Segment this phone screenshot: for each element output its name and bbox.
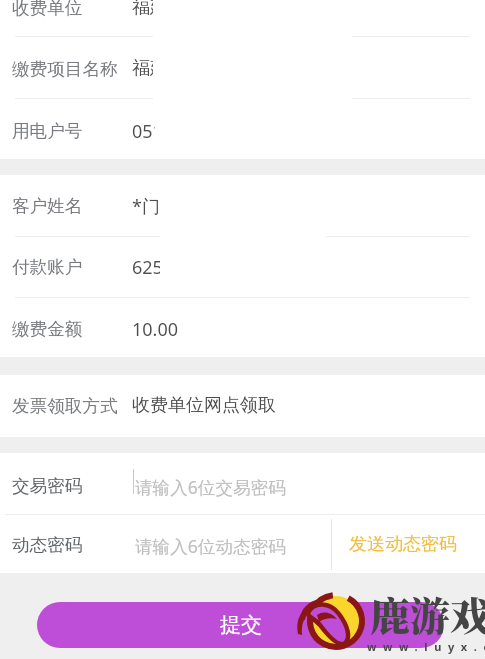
staticText: 收费单位网点领取	[132, 394, 276, 417]
staticText: 收费单位	[12, 0, 83, 19]
staticText: 0512345678	[132, 119, 155, 144]
staticText: 付款账户	[12, 256, 83, 278]
staticText: 福建省电力公司	[132, 57, 153, 80]
staticText: 缴费项目名称	[12, 58, 118, 80]
staticText: 10.00	[132, 317, 179, 342]
staticText: 发送动态密码	[349, 533, 457, 556]
staticText: 缴费金额	[12, 318, 83, 340]
staticText: 发票领取方式	[12, 395, 118, 417]
staticText: 请输入6位动态密码	[135, 534, 286, 558]
staticText: 请输入6位交易密码	[135, 475, 286, 499]
staticText: 动态密码	[12, 534, 83, 556]
staticText: 福建省电力公司	[132, 0, 153, 19]
staticText: 6259876543210	[132, 255, 160, 280]
staticText: www.luyx.cn	[367, 639, 485, 654]
staticText: 鹿游戏	[370, 585, 485, 642]
staticText: 提交	[220, 612, 262, 638]
button[interactable]: 提交	[37, 602, 444, 648]
staticText: 用电户号	[12, 120, 83, 142]
staticText: 交易密码	[12, 475, 83, 497]
staticText: *门市部	[132, 194, 160, 219]
staticText: 客户姓名	[12, 195, 83, 217]
button[interactable]: 发送动态密码	[337, 521, 468, 568]
